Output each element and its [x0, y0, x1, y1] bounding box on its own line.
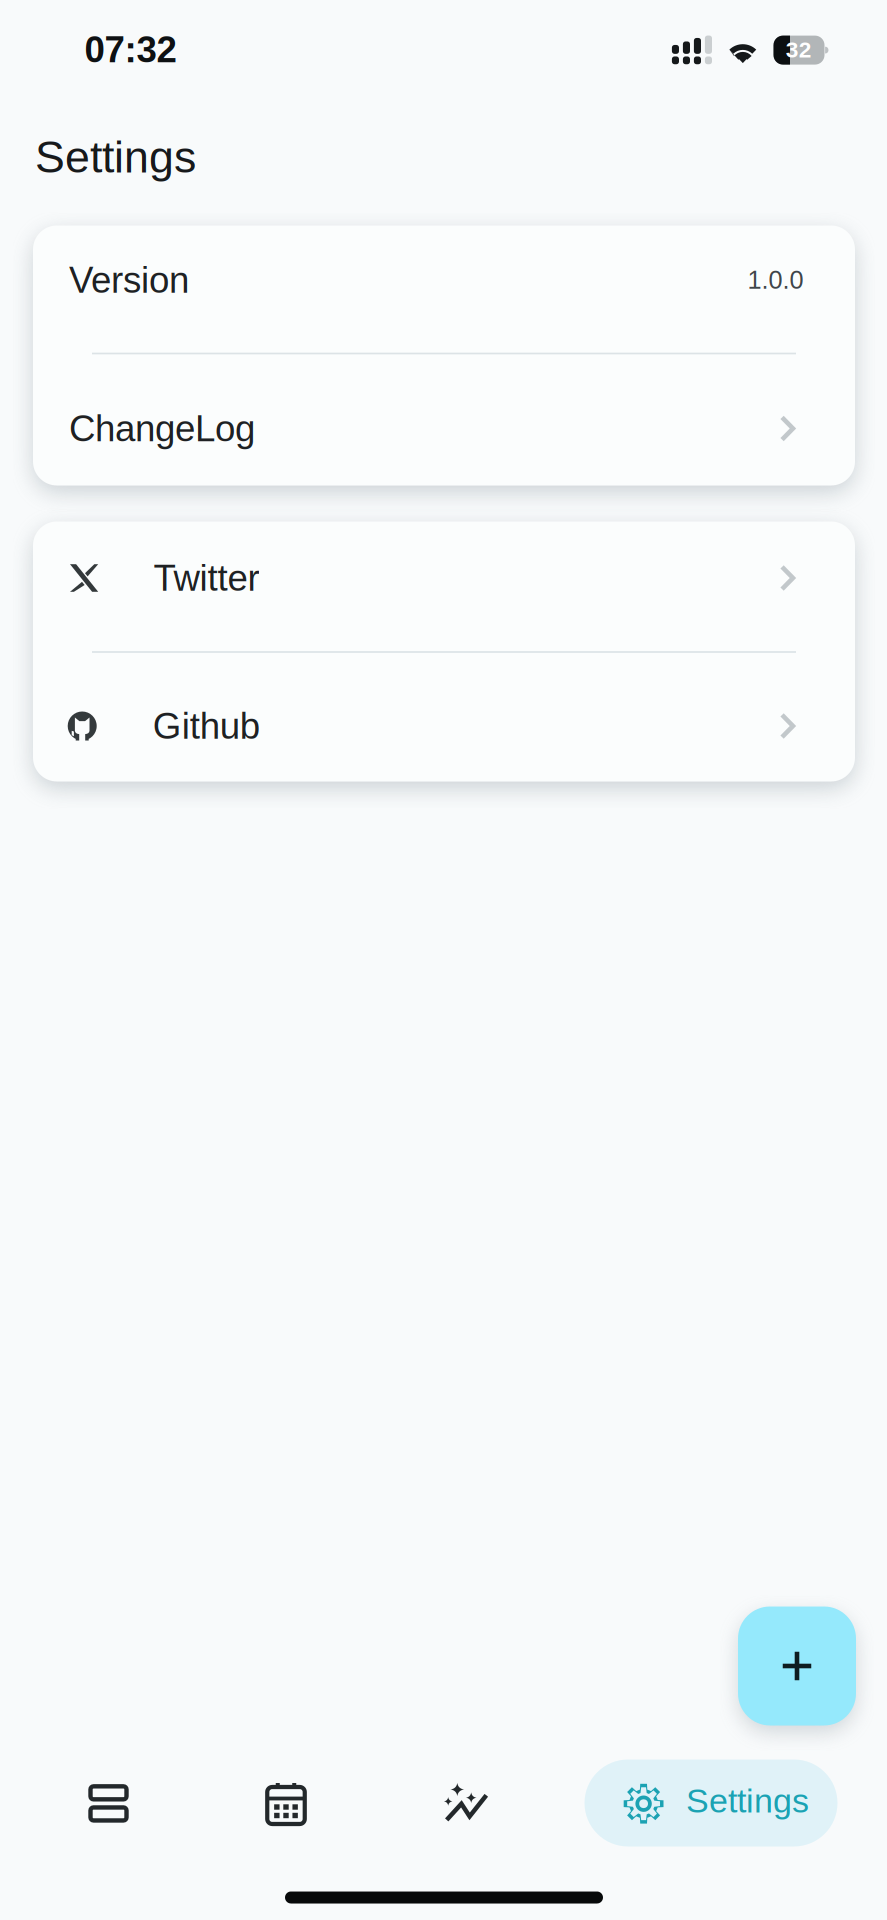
staticText: Version	[69, 259, 189, 300]
button[interactable]: Calendar	[211, 1755, 361, 1851]
button[interactable]: Add	[738, 1606, 856, 1725]
staticText: 1.0.0	[747, 266, 803, 294]
staticText: 32	[786, 37, 812, 62]
staticText: 07:32	[84, 29, 176, 70]
button[interactable]: Dashboard	[33, 1755, 183, 1851]
staticText: Settings	[35, 132, 196, 182]
button[interactable]: Insights	[390, 1752, 540, 1848]
staticText: Settings	[686, 1782, 809, 1820]
staticText: Github	[153, 705, 260, 746]
button[interactable]: Github	[33, 660, 855, 791]
button[interactable]: Twitter	[33, 512, 855, 643]
staticText: Twitter	[153, 557, 259, 598]
button[interactable]: Settings	[584, 1759, 837, 1846]
staticText: ChangeLog	[69, 408, 255, 449]
button[interactable]: ChangeLog	[33, 363, 855, 494]
